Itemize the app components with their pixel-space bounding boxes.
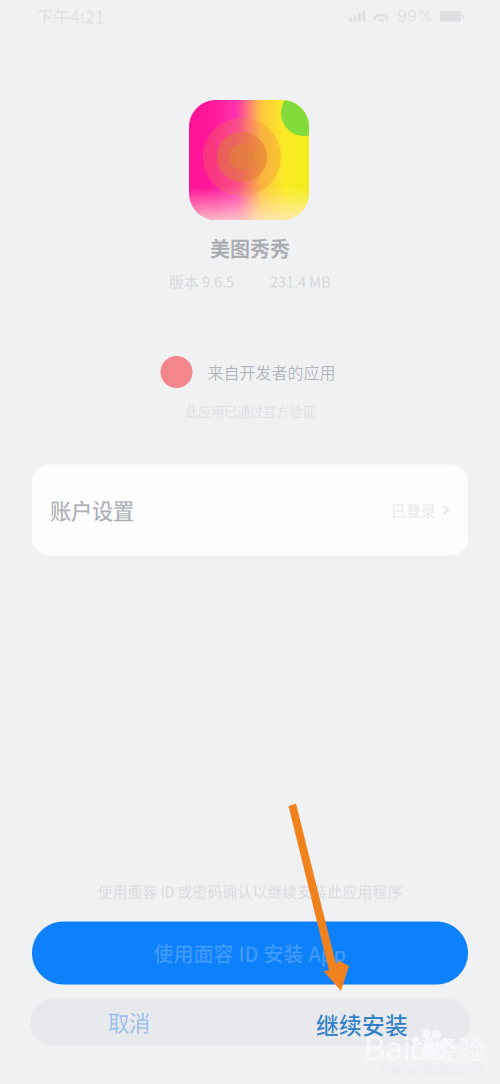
button[interactable]: 账户设置 [32, 464, 468, 555]
staticText: 取消 [108, 1007, 150, 1037]
staticText: 来自开发者的应用 [207, 360, 335, 384]
staticText: 账户设置 [50, 495, 134, 525]
staticText: 已登录 [391, 499, 436, 521]
staticText: 使用面容 ID 安装 App [153, 938, 346, 967]
staticText: 此应用已通过官方验证 [185, 401, 315, 421]
staticText: 经验 [431, 1029, 485, 1067]
button[interactable]: 取消 [30, 998, 470, 1045]
staticText: 继续安装 [316, 1008, 408, 1040]
staticText: 版本 9.6.5 [169, 270, 234, 292]
staticText: 下午4:21 [36, 3, 105, 29]
staticText: 美图秀秀 [210, 233, 290, 262]
staticText: 99% [397, 6, 433, 26]
staticText: Baidu [364, 1028, 448, 1068]
button[interactable]: 使用面容 ID 安装 App [32, 921, 468, 984]
staticText: 231.4 MB [270, 270, 331, 292]
staticText: 使用面容 ID 或密码确认以继续安装此应用程序 [97, 880, 402, 902]
